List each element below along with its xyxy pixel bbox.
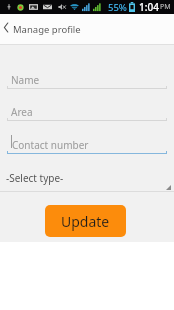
- button[interactable]: Update: [45, 205, 126, 237]
- staticText: Name: [11, 73, 40, 87]
- staticText: Contact number: [12, 138, 89, 152]
- staticText: Area: [11, 105, 33, 119]
- button[interactable]: Name: [0, 68, 174, 89]
- staticText: PM: [160, 2, 171, 12]
- button[interactable]: Back: [0, 14, 13, 45]
- button[interactable]: -Select type-: [0, 169, 174, 191]
- button[interactable]: Contact number: [0, 133, 174, 154]
- staticText: Manage profile: [13, 23, 81, 36]
- staticText: Update: [61, 212, 110, 231]
- staticText: 55%: [108, 1, 127, 14]
- staticText: 1:04: [139, 0, 159, 14]
- button[interactable]: Area: [0, 100, 174, 121]
- staticText: -Select type-: [6, 171, 64, 185]
